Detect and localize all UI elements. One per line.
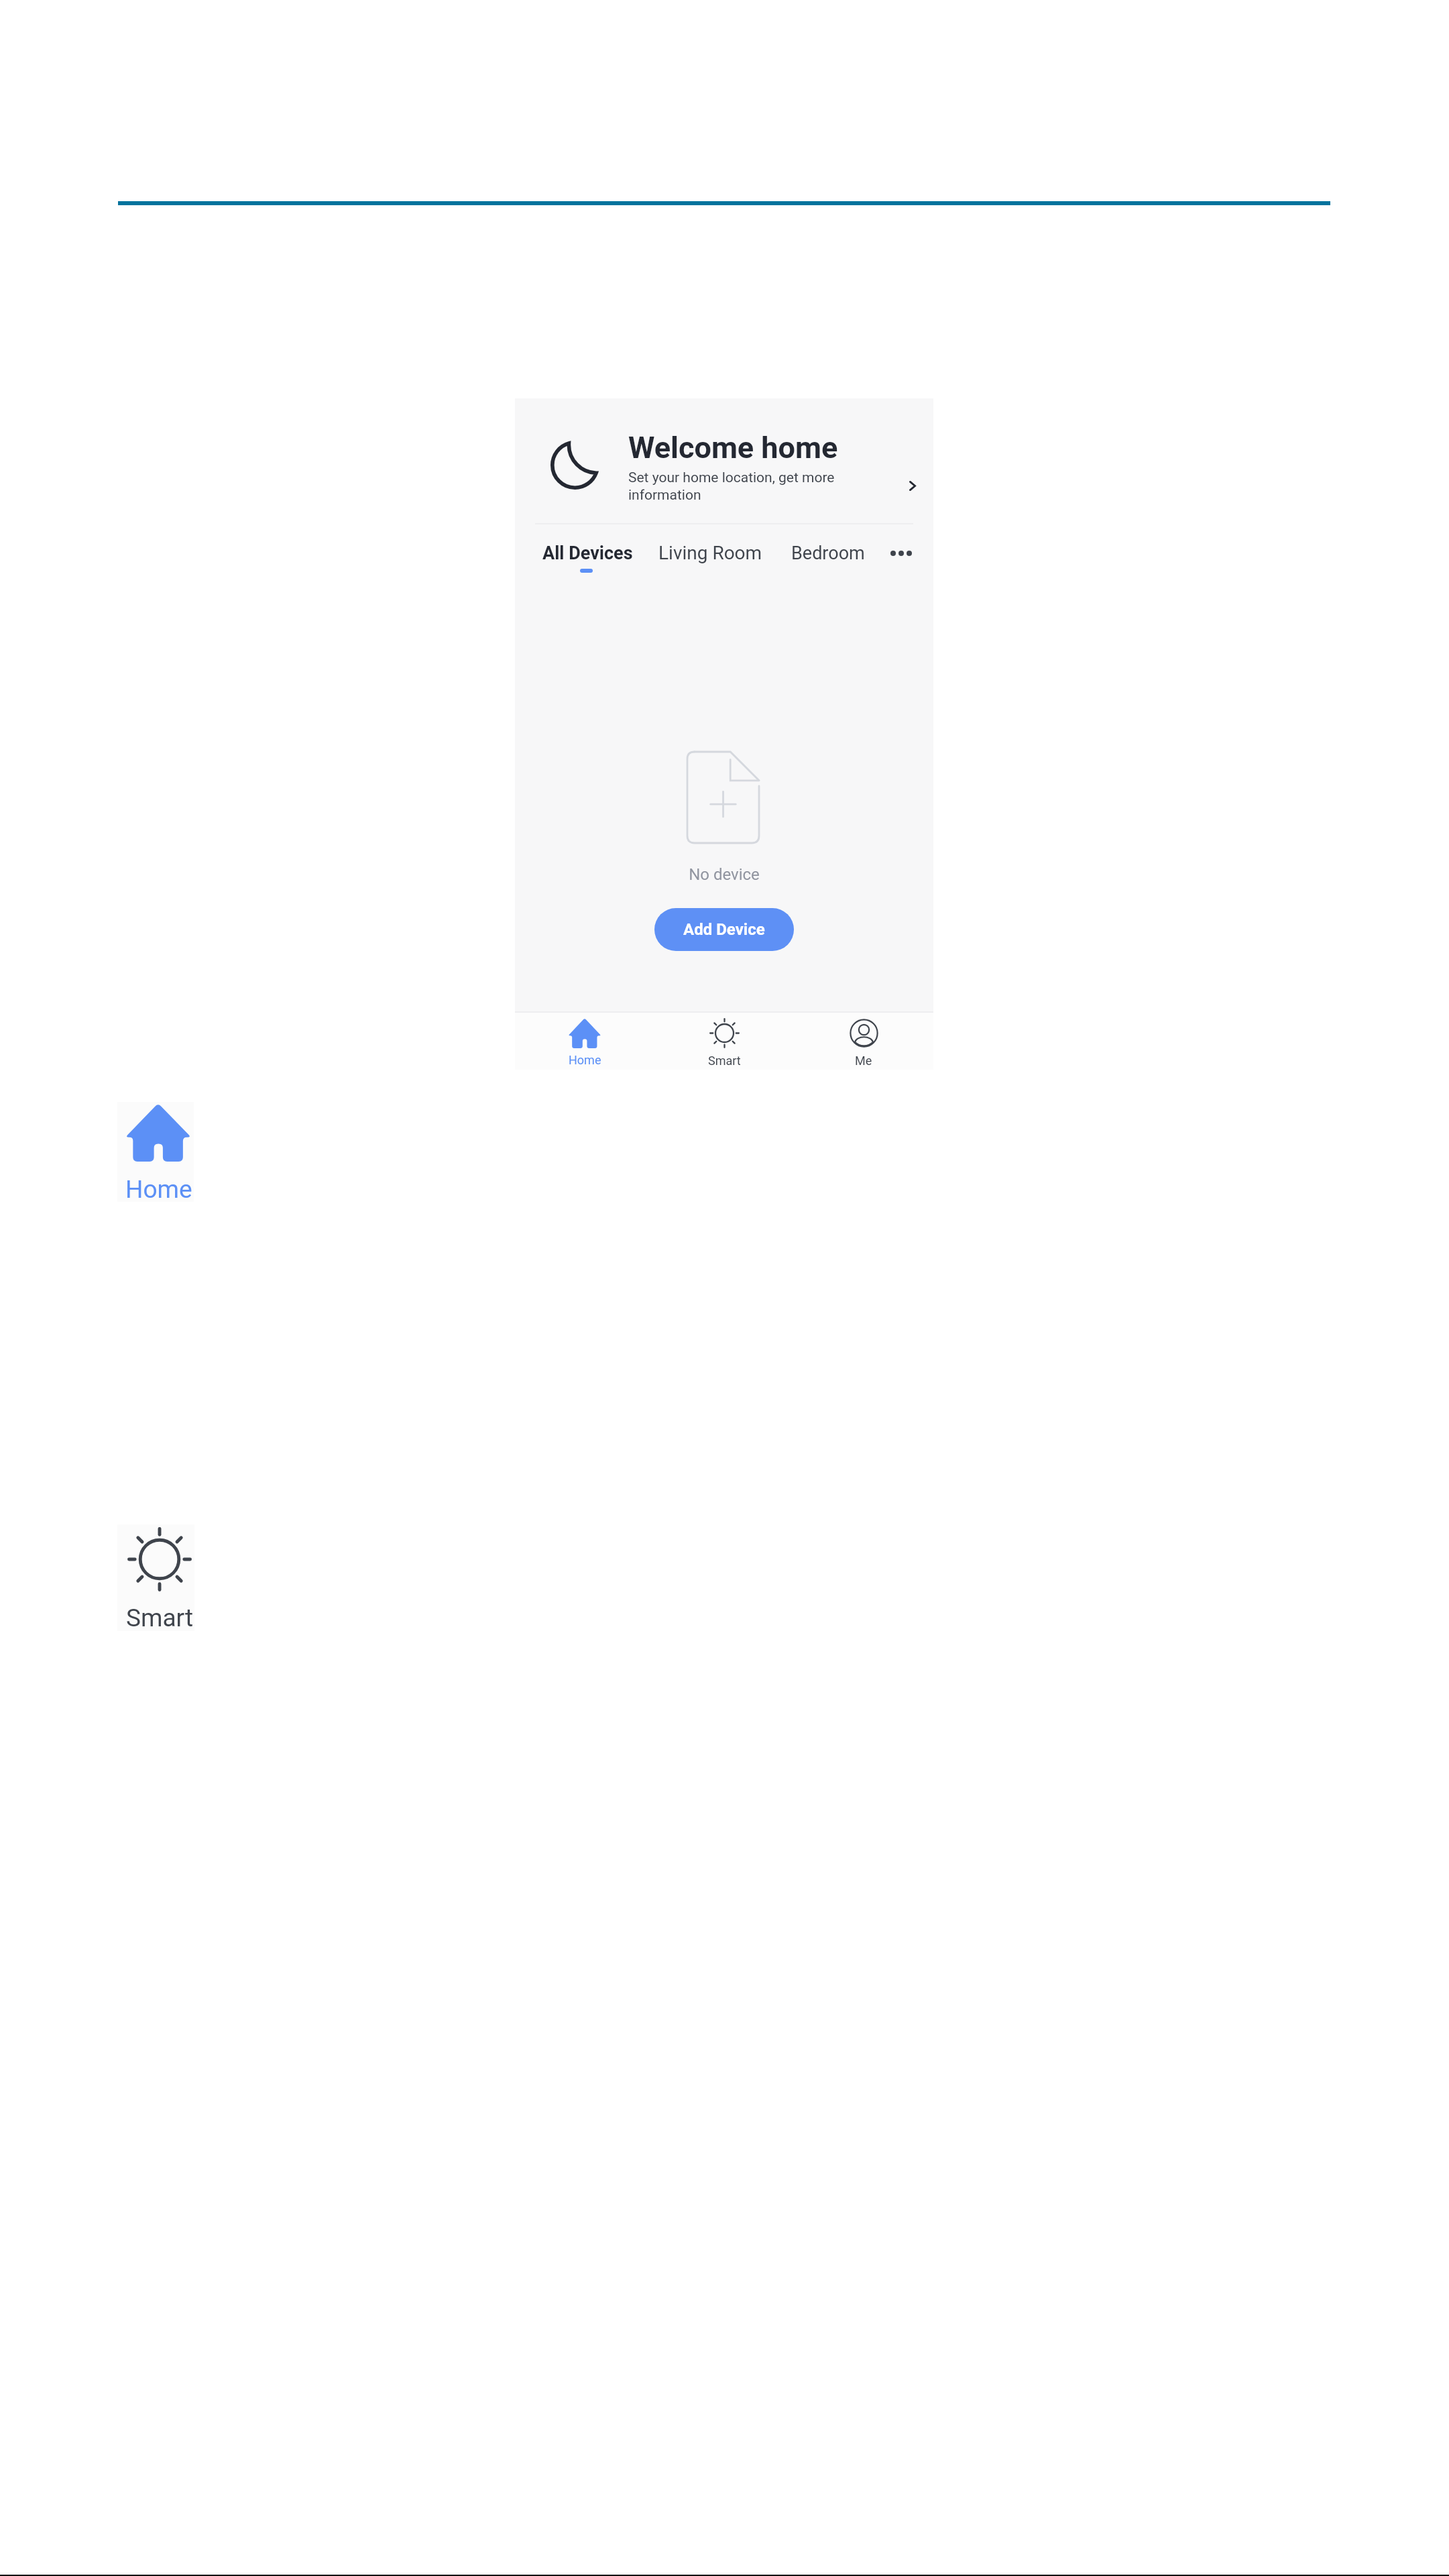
staticText: Home (125, 1175, 192, 1204)
button[interactable]: All Devices (542, 543, 633, 563)
button[interactable]: More rooms (886, 543, 916, 564)
other: Home (569, 1018, 601, 1048)
button[interactable]: Bedroom (791, 543, 865, 563)
other: Home (126, 1103, 190, 1162)
other: Me (849, 1018, 879, 1048)
button[interactable]: Add Device (654, 908, 794, 951)
staticText: Smart (708, 1054, 741, 1068)
staticText: Welcome home (628, 431, 838, 465)
button[interactable]: Home (515, 1013, 654, 1067)
staticText: Set your home location, get more informa… (628, 468, 839, 503)
staticText: No device (689, 865, 760, 884)
button[interactable]: Welcome home (515, 398, 933, 521)
other: Smart (709, 1018, 740, 1048)
button[interactable]: Me (794, 1013, 933, 1068)
staticText: Me (855, 1054, 872, 1068)
staticText: Smart (126, 1604, 194, 1632)
staticText: Home (569, 1053, 601, 1067)
other: Open home settings (904, 477, 921, 494)
staticText: Add Device (683, 920, 765, 939)
staticText: All Devices (542, 543, 633, 563)
button[interactable]: Living Room (658, 543, 762, 564)
other: Smart (127, 1527, 192, 1591)
button[interactable]: Smart (654, 1013, 794, 1068)
